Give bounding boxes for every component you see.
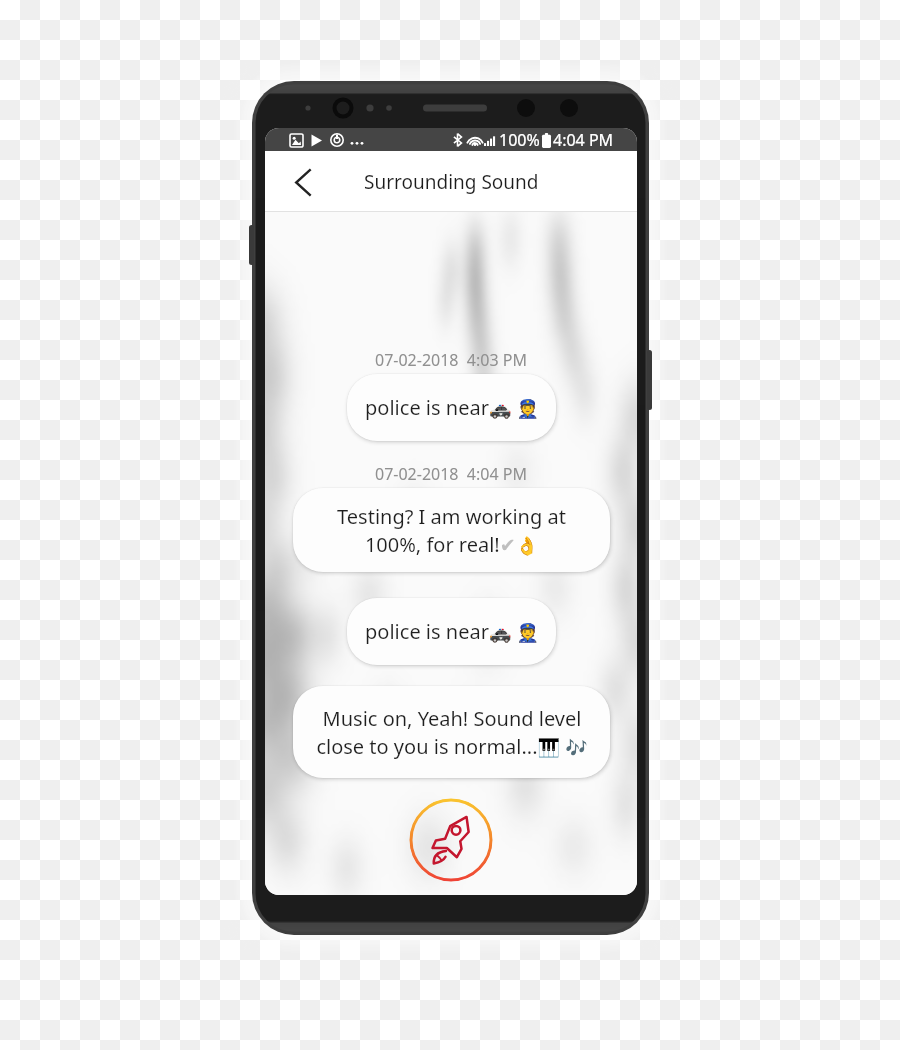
- staticText: 100%: [499, 129, 540, 151]
- button[interactable]: Music on, Yeah! Sound level close to you…: [293, 686, 610, 778]
- button[interactable]: Back: [281, 160, 325, 204]
- button[interactable]: Launch: [409, 798, 493, 882]
- staticText: Testing? I am working at 100%, for real!…: [337, 503, 566, 558]
- staticText: police is near🚓 👮: [365, 618, 539, 645]
- staticText: Surrounding Sound: [364, 169, 539, 195]
- staticText: police is near🚓 👮: [365, 394, 539, 421]
- button[interactable]: Testing? I am working at 100%, for real!…: [293, 488, 610, 572]
- button[interactable]: police is near🚓 👮: [347, 598, 556, 665]
- button[interactable]: police is near🚓 👮: [347, 374, 556, 441]
- staticText: 4:04 PM: [553, 129, 614, 151]
- staticText: 07-02-2018 4:04 PM: [375, 463, 527, 485]
- staticText: Music on, Yeah! Sound level close to you…: [316, 705, 588, 760]
- staticText: 07-02-2018 4:03 PM: [375, 349, 527, 371]
